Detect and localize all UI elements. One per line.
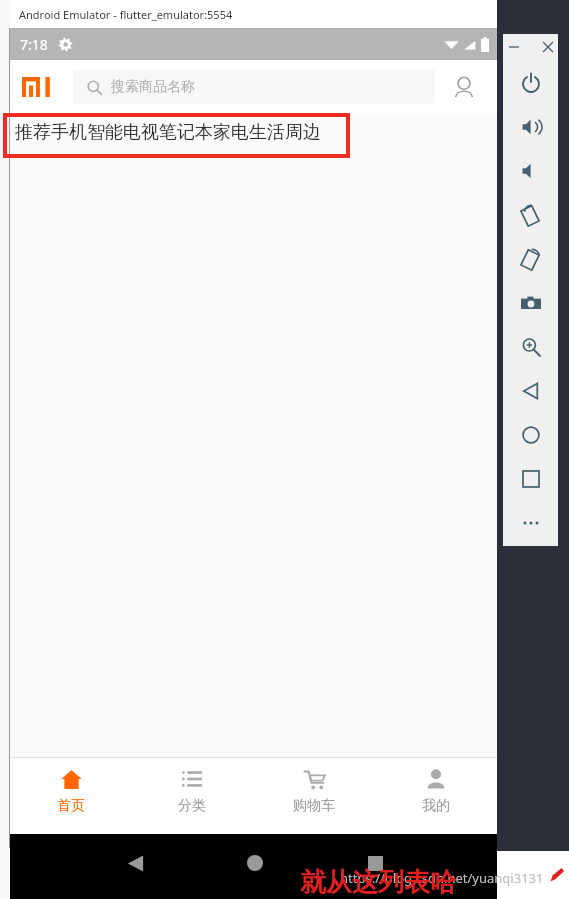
button[interactable]: 首页 — [10, 757, 131, 827]
button[interactable]: Account — [447, 70, 481, 104]
staticText: 7:18 — [20, 35, 48, 54]
button[interactable]: Mi logo — [20, 70, 54, 104]
button[interactable]: Overview — [502, 457, 559, 501]
button[interactable]: Rotate right — [502, 237, 559, 281]
button[interactable]: Screenshot — [502, 281, 559, 325]
button[interactable]: 购物车 — [253, 757, 375, 827]
staticText: 首页 — [57, 797, 85, 815]
button[interactable]: Home — [240, 848, 270, 878]
button[interactable]: Home — [502, 413, 559, 457]
button[interactable]: 搜索商品名称 — [73, 70, 435, 104]
button[interactable]: Zoom — [502, 325, 559, 369]
staticText: 分类 — [178, 797, 206, 815]
button[interactable]: Back — [120, 848, 150, 878]
button[interactable]: Rotate left — [502, 193, 559, 237]
button[interactable]: Minimize — [505, 38, 523, 56]
button[interactable]: Volume down — [502, 149, 559, 193]
button[interactable]: Volume up — [502, 105, 559, 149]
staticText: 我的 — [422, 797, 450, 815]
button[interactable]: More — [502, 501, 559, 545]
button[interactable]: Recents — [360, 848, 390, 878]
button[interactable]: Back — [502, 369, 559, 413]
button[interactable]: Power — [502, 61, 559, 105]
button[interactable]: 我的 — [375, 757, 497, 827]
staticText: 就从这列表哈 — [300, 866, 456, 899]
staticText: https://blog.csdn.net/yuanqi3131 — [340, 869, 544, 887]
staticText: 搜索商品名称 — [111, 78, 195, 96]
staticText: 购物车 — [293, 797, 335, 815]
staticText: Android Emulator - flutter_emulator:5554 — [19, 7, 233, 22]
button[interactable]: 推荐手机智能电视笔记本家电生活周边 — [15, 121, 321, 144]
button[interactable]: Close — [539, 38, 557, 56]
button[interactable]: 分类 — [131, 757, 253, 827]
